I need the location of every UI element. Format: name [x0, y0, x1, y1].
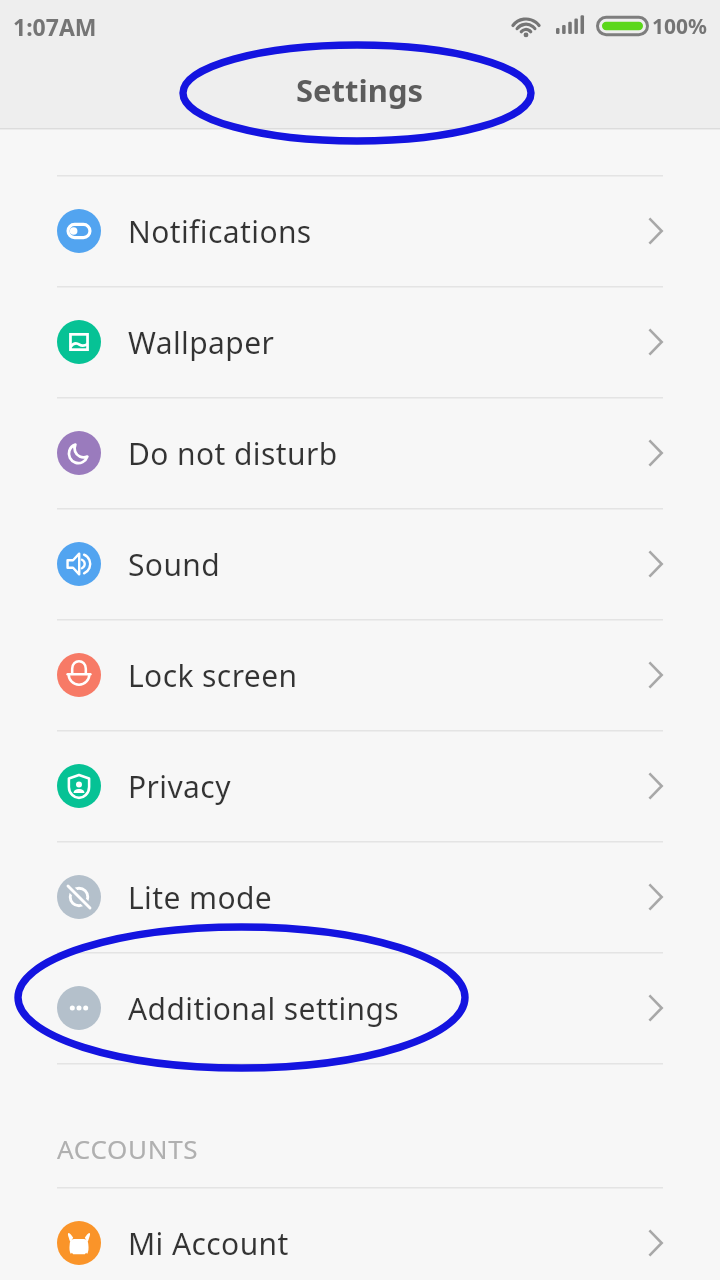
staticText: Additional settings — [128, 988, 400, 1029]
staticText: Wallpaper — [128, 322, 275, 363]
button[interactable]: Privacy — [0, 731, 720, 841]
staticText: 100% — [652, 12, 707, 41]
button[interactable]: Wallpaper — [0, 287, 720, 397]
button[interactable]: Sound — [0, 509, 720, 619]
button[interactable]: Mi Account — [0, 1188, 720, 1280]
button[interactable]: Lite mode — [0, 842, 720, 952]
button[interactable]: Notifications — [0, 176, 720, 286]
staticText: Notifications — [128, 211, 312, 252]
button[interactable]: Additional settings — [0, 953, 720, 1063]
staticText: Lock screen — [128, 655, 298, 696]
staticText: Lite mode — [128, 877, 273, 918]
button[interactable]: Lock screen — [0, 620, 720, 730]
staticText: Mi Account — [128, 1223, 289, 1264]
staticText: Sound — [128, 544, 221, 585]
staticText: 1:07AM — [13, 11, 97, 42]
button[interactable]: Do not disturb — [0, 398, 720, 508]
staticText: Do not disturb — [128, 433, 338, 474]
staticText: Privacy — [128, 766, 231, 807]
staticText: ACCOUNTS — [57, 1131, 199, 1166]
staticText: Settings — [296, 69, 424, 111]
